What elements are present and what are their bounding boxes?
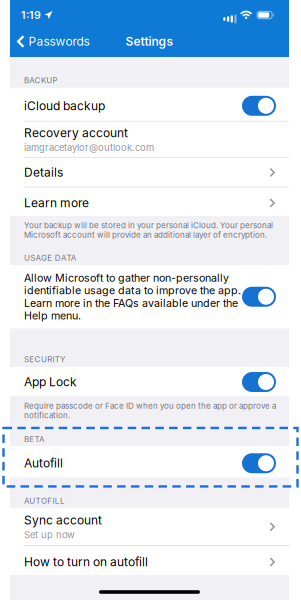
staticText: Your backup will be stored in your perso… — [24, 220, 273, 239]
staticText: Set up now — [24, 529, 75, 540]
staticText: iamgracetaylor@outlook.com — [24, 142, 154, 153]
staticText: Autofill — [24, 456, 63, 470]
staticText: SECURITY — [24, 355, 65, 364]
staticText: Require passcode or Face ID when you ope… — [24, 401, 276, 420]
staticText: Learn more — [24, 196, 89, 210]
button[interactable]: How to turn on autofill — [10, 546, 289, 575]
button[interactable]: Allow Microsoft to gather usage data — [242, 287, 276, 307]
staticText: AUTOFILL — [24, 496, 65, 505]
staticText: USAGE DATA — [24, 253, 77, 262]
button[interactable]: Sync account — [10, 508, 289, 545]
staticText: Settings — [125, 34, 173, 49]
staticText: How to turn on autofill — [24, 555, 148, 569]
staticText: Sync account — [24, 513, 102, 527]
button[interactable]: Recovery account — [10, 122, 289, 157]
staticText: Passwords — [28, 34, 89, 49]
button[interactable]: Learn more — [10, 188, 289, 216]
button[interactable]: iCloud backup — [242, 96, 276, 116]
button[interactable]: App Lock — [242, 372, 276, 392]
staticText: iCloud backup — [24, 99, 105, 113]
staticText: 1:19 — [21, 9, 41, 21]
staticText: Details — [24, 165, 63, 180]
staticText: BETA — [24, 435, 45, 444]
button[interactable]: Autofill — [242, 453, 276, 473]
button[interactable]: Passwords — [10, 34, 89, 49]
button[interactable]: Details — [10, 158, 289, 187]
staticText: Recovery account — [24, 126, 128, 140]
staticText: App Lock — [24, 375, 77, 389]
staticText: BACKUP — [24, 76, 57, 85]
staticText: Allow Microsoft to gather non-personally… — [24, 272, 241, 322]
